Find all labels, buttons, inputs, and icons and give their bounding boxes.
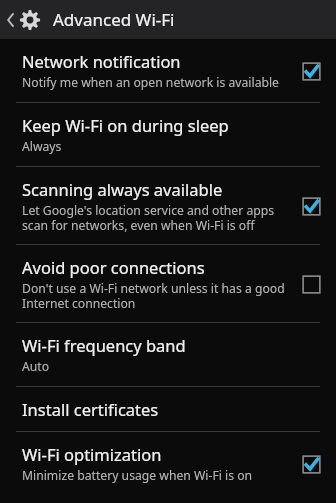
staticText: Network notification	[22, 50, 181, 72]
staticText: Scanning always available	[22, 178, 223, 200]
staticText: Advanced Wi-Fi	[53, 8, 175, 31]
button[interactable]: Avoid poor connections	[0, 245, 336, 322]
staticText: Let Google's location service and other …	[22, 202, 288, 233]
button[interactable]: Wi-Fi frequency band	[0, 323, 336, 386]
button[interactable]: Navigate up, Advanced Wi-Fi	[0, 0, 45, 39]
staticText: Always	[22, 138, 62, 155]
staticText: Don't use a Wi-Fi network unless it has …	[22, 280, 288, 311]
staticText: Minimize battery usage when Wi-Fi is on	[22, 467, 253, 484]
staticText: Wi-Fi frequency band	[22, 334, 186, 356]
button[interactable]: Checked	[300, 60, 322, 82]
button[interactable]: Wi-Fi optimization	[0, 432, 336, 495]
button[interactable]: Checked	[300, 453, 322, 475]
staticText: Notify me when an open network is availa…	[22, 74, 279, 91]
staticText: Keep Wi-Fi on during sleep	[22, 114, 229, 136]
button[interactable]: Install certificates	[0, 387, 336, 431]
staticText: Wi-Fi optimization	[22, 443, 162, 465]
button[interactable]: Network notification	[0, 39, 336, 102]
staticText: Avoid poor connections	[22, 256, 205, 278]
staticText: Auto	[22, 358, 50, 375]
button[interactable]: Keep Wi-Fi on during sleep	[0, 103, 336, 166]
button[interactable]: Unchecked	[300, 273, 322, 295]
staticText: Install certificates	[22, 398, 159, 420]
button[interactable]: Scanning always available	[0, 167, 336, 244]
button[interactable]: Checked	[300, 195, 322, 217]
